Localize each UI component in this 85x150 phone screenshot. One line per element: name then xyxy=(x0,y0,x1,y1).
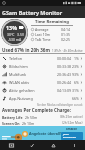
staticText: 93% xyxy=(71,72,79,77)
staticText: 1% xyxy=(71,56,79,61)
button[interactable]: Keyboard xyxy=(0,140,22,150)
staticText: Aktiv gehalten xyxy=(9,88,35,93)
button[interactable]: Average xyxy=(31,27,73,32)
button[interactable]: WLAN aktiv xyxy=(2,78,83,86)
staticText: 13% xyxy=(6,24,18,31)
staticText: 23% xyxy=(71,64,79,69)
button[interactable]: Telefon xyxy=(2,54,83,62)
button[interactable]: Multifunk xyxy=(2,70,83,78)
staticText: WLAN aktiv xyxy=(9,80,30,85)
staticText: App-Nutzung xyxy=(9,96,33,101)
staticText: 66% xyxy=(71,96,79,101)
staticText: Screen On xyxy=(2,121,20,126)
staticText: Time Remaining xyxy=(31,19,73,25)
staticText: 30°C 3.5V xyxy=(7,32,24,37)
staticText: 2h 50m xyxy=(25,115,38,120)
staticText: 2h 10m xyxy=(22,121,35,126)
staticText: (2h 52m Max) xyxy=(62,121,83,125)
staticText: Talk Time xyxy=(35,37,51,42)
staticText: Last 10m xyxy=(35,32,50,37)
staticText: 00:33:38 xyxy=(57,64,71,69)
button[interactable]: Last 10m xyxy=(31,32,73,37)
button[interactable]: Home xyxy=(43,140,64,150)
staticText: Averages Per Complete Charge: xyxy=(2,107,71,113)
staticText: (8h 25m active) xyxy=(60,115,83,119)
staticText: -530 mA xyxy=(8,37,22,42)
staticText: GSam Battery Monitor xyxy=(2,9,63,16)
staticText: Bildschirm xyxy=(9,64,28,69)
staticText: Multifunk xyxy=(9,72,27,77)
staticText: 01:35 xyxy=(61,32,70,37)
staticText: 20:36:43 xyxy=(57,72,71,77)
button[interactable]: Bildschirm xyxy=(2,62,83,70)
staticText: Sie den Modus vollstandigen zuruck xyxy=(37,103,83,107)
staticText: amazon xyxy=(66,127,78,131)
staticText: Telefon xyxy=(9,56,23,61)
button[interactable]: Screen On xyxy=(2,120,83,126)
button[interactable]: App-Nutzung xyxy=(2,94,83,102)
staticText: 02:25 xyxy=(61,37,70,42)
button[interactable]: Recents xyxy=(64,140,85,150)
staticText: 31% xyxy=(71,88,79,93)
staticText: Used 67% in 20h 36m xyxy=(2,47,50,53)
button[interactable]: JETZT ENTDECKEN xyxy=(63,133,81,139)
staticText: 00:00:04 xyxy=(57,56,71,61)
staticText: Angebote überall! xyxy=(29,131,61,136)
button[interactable]: Battery Life xyxy=(2,114,83,120)
staticText: 04:14 xyxy=(61,27,70,32)
staticText: Average xyxy=(35,27,49,32)
button[interactable]: Battery 13 percent xyxy=(1,19,28,46)
button[interactable]: Angebote überall! xyxy=(0,126,85,140)
staticText: Battery Life xyxy=(2,115,23,120)
staticText: 00:26:44 xyxy=(57,80,71,85)
staticText: 6% xyxy=(71,80,79,85)
button[interactable]: Talk Time xyxy=(31,37,73,42)
button[interactable]: Back xyxy=(22,140,43,150)
button[interactable]: Aktiv gehalten xyxy=(2,86,83,94)
staticText: JETZT ENTDECKEN xyxy=(63,133,81,139)
staticText: 04:13:09 xyxy=(57,88,71,93)
staticText: 1.8%/h · 4h 40m Active xyxy=(52,49,83,53)
